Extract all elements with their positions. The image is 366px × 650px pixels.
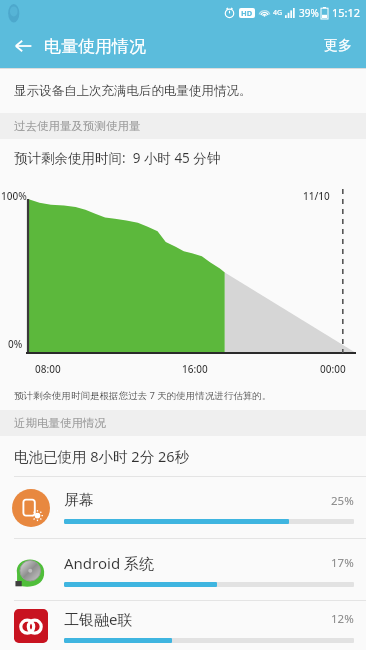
staticText: 100% (1, 189, 27, 203)
staticText: 电池已使用 8小时 2分 26秒 (14, 446, 189, 466)
button[interactable]: 屏幕 (0, 476, 366, 538)
staticText: 屏幕 (64, 491, 331, 510)
staticText: 预计剩余使用时间: 9 小时 45 分钟 (14, 149, 221, 167)
staticText: 00:00 (320, 362, 346, 376)
staticText: 显示设备自上次充满电后的电量使用情况。 (14, 83, 252, 99)
staticText: 更多 (324, 37, 352, 55)
staticText: 0% (8, 337, 23, 351)
staticText: HD (241, 8, 253, 18)
staticText: 工银融e联 (64, 609, 331, 629)
button[interactable]: 更多 (310, 24, 366, 68)
staticText: 25% (331, 493, 354, 509)
staticText: 39% (299, 6, 319, 20)
staticText: 08:00 (35, 362, 61, 376)
staticText: 11/10 (303, 189, 330, 203)
staticText: 近期电量使用情况 (14, 416, 106, 430)
staticText: 4G (273, 8, 283, 18)
staticText: 电量使用情况 (44, 36, 146, 57)
staticText: 过去使用量及预测使用量 (14, 119, 141, 133)
staticText: Android 系统 (64, 553, 331, 573)
staticText: 16:00 (182, 362, 208, 376)
staticText: 17% (331, 555, 354, 571)
staticText: 12% (331, 611, 354, 627)
button[interactable]: Android 系统 (0, 538, 366, 600)
button[interactable]: 工银融e联 (0, 600, 366, 650)
staticText: 预计剩余使用时间是根据您过去 7 天的使用情况进行估算的。 (14, 389, 272, 402)
staticText: 15:12 (332, 5, 361, 20)
button[interactable]: Back (0, 24, 46, 68)
